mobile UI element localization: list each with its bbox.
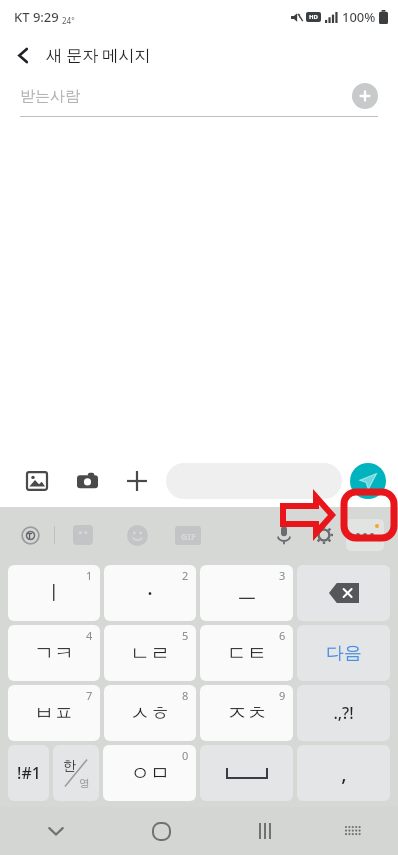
button[interactable]: ㅅㅎ	[104, 685, 196, 741]
button[interactable]: Recents	[244, 809, 288, 853]
button[interactable]: ㅈㅊ	[200, 685, 293, 741]
button[interactable]: More options	[346, 519, 384, 551]
staticText: ㅅㅎ	[130, 701, 170, 726]
button[interactable]: ㅇㅁ	[103, 745, 196, 801]
staticText: ㄴㄹ	[130, 641, 170, 666]
staticText: 9	[279, 688, 286, 703]
button[interactable]: ㅣ	[8, 565, 100, 621]
button[interactable]: Space	[200, 745, 293, 801]
staticText: 8	[182, 688, 189, 703]
button[interactable]: Add recipient	[352, 83, 378, 109]
button[interactable]: ㅂㅍ	[8, 685, 100, 741]
staticText: 0	[182, 748, 189, 763]
staticText: 24°	[62, 15, 75, 26]
button[interactable]: ,	[297, 745, 390, 801]
staticText: .,?!	[333, 702, 354, 724]
button[interactable]: Home	[139, 809, 183, 853]
staticText: 다음	[326, 642, 362, 665]
staticText: ·	[147, 580, 153, 607]
staticText: !#1	[17, 762, 41, 784]
button[interactable]: Gallery	[22, 466, 52, 496]
staticText: ㅡ	[237, 581, 257, 606]
button[interactable]: Voice input	[268, 519, 300, 551]
staticText: KT 9:29	[14, 8, 59, 26]
button[interactable]: Korean English toggle	[53, 745, 99, 801]
button[interactable]: ·	[104, 565, 196, 621]
staticText: ㅂㅍ	[34, 701, 74, 726]
button[interactable]: Send	[350, 463, 386, 499]
staticText: 한	[63, 757, 76, 773]
button[interactable]: ㄴㄹ	[104, 625, 196, 681]
staticText: 받는사람	[20, 87, 80, 106]
staticText: ,	[341, 760, 347, 787]
button[interactable]: !#1	[8, 745, 49, 801]
button[interactable]: 다음	[297, 625, 390, 681]
staticText: 6	[279, 628, 286, 643]
staticText: 2	[182, 568, 189, 583]
staticText: GIF	[181, 530, 196, 542]
button[interactable]: .,?!	[297, 685, 390, 741]
staticText: 1	[86, 568, 93, 583]
staticText: 새 문자 메시지	[46, 44, 151, 66]
staticText: 7	[86, 688, 93, 703]
button[interactable]: Backspace	[297, 565, 390, 621]
button[interactable]: Back	[0, 34, 46, 76]
staticText: 5	[182, 628, 189, 643]
staticText: T	[27, 529, 33, 541]
staticText: 4	[86, 628, 93, 643]
button[interactable]: Hide keyboard	[34, 809, 78, 853]
button[interactable]: Translate	[14, 519, 46, 551]
button[interactable]: GIF	[175, 526, 201, 545]
staticText: 100%	[342, 8, 376, 26]
button[interactable]	[166, 463, 342, 499]
staticText: ㄱㅋ	[34, 641, 74, 666]
button[interactable]: Emoji	[121, 519, 153, 551]
button[interactable]: 받는사람	[0, 76, 398, 116]
staticText: 3	[279, 568, 286, 583]
button[interactable]: Keyboard switcher	[334, 813, 370, 849]
staticText: ㅇㅁ	[130, 761, 170, 786]
staticText: ㄷㅌ	[227, 641, 267, 666]
button[interactable]: Stickers	[67, 519, 99, 551]
staticText: 영	[79, 776, 90, 790]
staticText: ㅈㅊ	[227, 701, 267, 726]
button[interactable]: ㅡ	[200, 565, 293, 621]
button[interactable]: ㄷㅌ	[200, 625, 293, 681]
button[interactable]: More attachments	[122, 466, 152, 496]
staticText: HD	[309, 13, 318, 21]
staticText: ㅣ	[44, 581, 64, 606]
button[interactable]: Keyboard settings	[308, 519, 340, 551]
button[interactable]: Camera	[72, 466, 102, 496]
button[interactable]: ㄱㅋ	[8, 625, 100, 681]
